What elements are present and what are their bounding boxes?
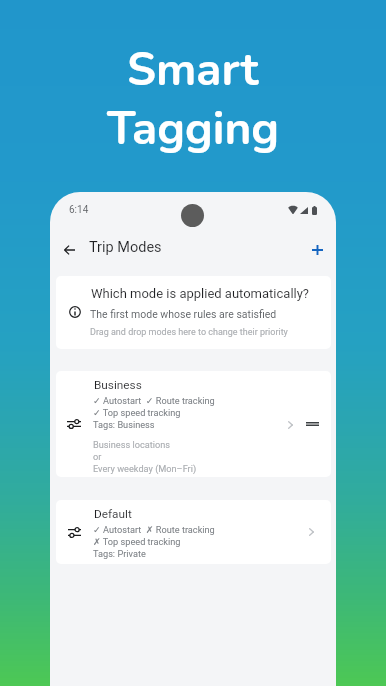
staticText: ✓ Top speed tracking <box>93 407 181 418</box>
staticText: Tagging <box>107 97 280 160</box>
staticText: ✗ Top speed tracking <box>93 536 181 547</box>
button[interactable]: Reorder mode <box>300 415 324 433</box>
button[interactable]: Business <box>56 371 331 477</box>
staticText: Smart <box>127 38 259 101</box>
staticText: The first mode whose rules are satisfied <box>90 308 277 320</box>
button[interactable]: Add mode <box>300 233 334 267</box>
staticText: Every weekday (Mon–Fri) <box>93 463 197 474</box>
button[interactable]: Default <box>56 500 331 564</box>
staticText: or <box>93 451 102 462</box>
staticText: Trip Modes <box>89 239 162 256</box>
staticText: Which mode is applied automatically? <box>91 286 310 301</box>
staticText: Tags: Private <box>93 548 146 559</box>
staticText: Default <box>94 507 132 521</box>
staticText: Business locations <box>93 439 171 450</box>
button[interactable]: Back <box>52 233 86 267</box>
staticText: 6:14 <box>69 204 89 216</box>
staticText: ✓ Autostart ✓ Route tracking <box>93 395 215 406</box>
staticText: Tags: Business <box>93 419 155 430</box>
button[interactable]: Which mode is applied automatically? <box>56 276 331 349</box>
staticText: Drag and drop modes here to change their… <box>90 327 288 338</box>
staticText: Business <box>94 378 142 392</box>
staticText: ✓ Autostart ✗ Route tracking <box>93 524 215 535</box>
